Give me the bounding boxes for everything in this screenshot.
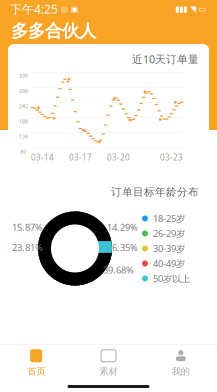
staticText: 首页: [27, 366, 45, 377]
staticText: 我的: [172, 366, 190, 377]
staticText: 03-20: [107, 152, 130, 163]
staticText: 134: [19, 133, 28, 140]
staticText: 订单目标年龄分布: [111, 185, 199, 198]
staticText: 15.87%: [12, 221, 43, 233]
staticText: 80: [20, 148, 26, 155]
staticText: 14.29%: [107, 221, 138, 233]
staticText: ◎ ▣: [61, 4, 79, 14]
staticText: 242: [19, 103, 28, 110]
staticText: 39.68%: [103, 264, 134, 276]
button[interactable]: 素材: [72, 345, 145, 381]
staticText: 下午4:25: [10, 1, 58, 17]
staticText: ▮▮▮ ◥ ▭: [175, 4, 207, 14]
staticText: 近10天订单量: [132, 52, 199, 66]
staticText: 多多合伙人: [11, 20, 96, 42]
staticText: 40-49岁: [153, 257, 185, 270]
staticText: 6.35%: [112, 241, 138, 254]
staticText: 素材: [99, 366, 117, 377]
button[interactable]: 首页: [0, 345, 72, 381]
staticText: 50岁以上: [153, 272, 190, 285]
staticText: 23.81%: [12, 241, 43, 254]
staticText: 330: [19, 72, 28, 79]
staticText: 03-23: [160, 152, 183, 163]
staticText: 188: [19, 118, 28, 125]
staticText: 30-39岁: [153, 242, 185, 255]
staticText: 18-25岁: [153, 212, 185, 225]
staticText: 296: [19, 87, 28, 94]
button[interactable]: 我的: [145, 345, 217, 381]
staticText: 03-14: [31, 152, 54, 163]
staticText: 03-17: [69, 152, 92, 163]
staticText: 26-29岁: [153, 227, 185, 240]
